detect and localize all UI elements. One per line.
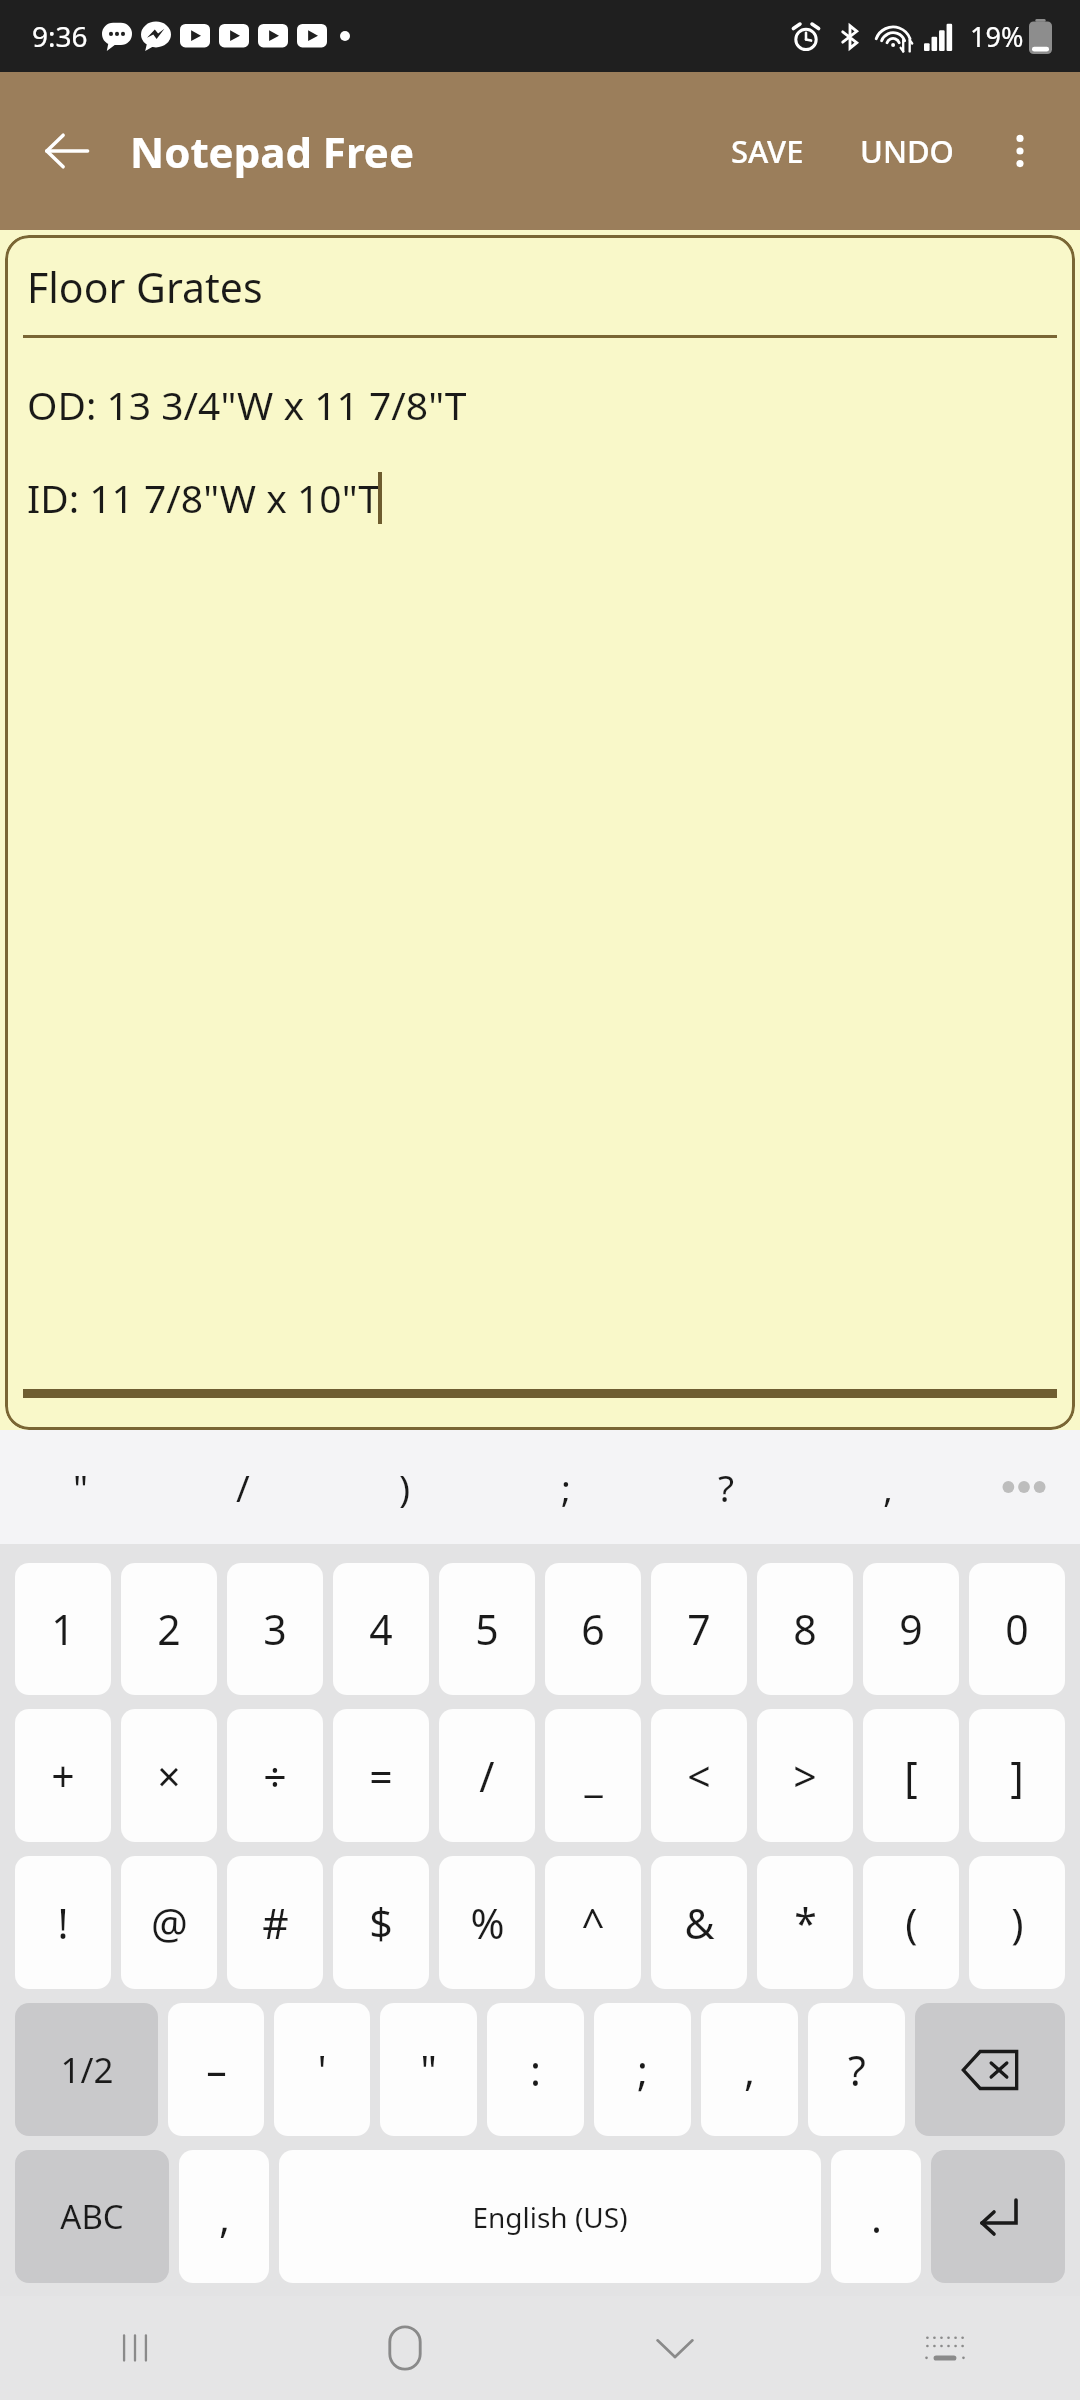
button[interactable]: < xyxy=(651,1709,747,1842)
staticText: , xyxy=(219,2189,230,2245)
button[interactable]: Hide keyboard xyxy=(540,2296,810,2400)
button[interactable]: ? xyxy=(646,1430,807,1544)
staticText: ; xyxy=(637,2042,648,2098)
staticText: @ xyxy=(151,1895,188,1951)
button[interactable]: 4 xyxy=(333,1563,429,1695)
button[interactable]: ! xyxy=(15,1856,111,1989)
staticText: ID: 11 7/8"W x 10"T xyxy=(27,471,381,524)
staticText: < xyxy=(687,1748,711,1804)
button[interactable]: English (US) xyxy=(279,2150,821,2283)
button[interactable]: _ xyxy=(545,1709,641,1842)
staticText: ; xyxy=(561,1462,571,1512)
staticText: Notepad Free xyxy=(130,123,415,180)
staticText: : xyxy=(530,2042,541,2098)
staticText: + xyxy=(51,1748,75,1804)
button[interactable]: ] xyxy=(969,1709,1065,1842)
staticText: ( xyxy=(905,1895,918,1951)
staticText: ] xyxy=(1010,1748,1024,1804)
button[interactable]: Backspace xyxy=(915,2003,1065,2136)
button[interactable]: > xyxy=(757,1709,853,1842)
staticText: 5 xyxy=(475,1601,499,1657)
button[interactable]: ; xyxy=(594,2003,691,2136)
button[interactable]: ; xyxy=(485,1430,646,1544)
button[interactable]: ÷ xyxy=(227,1709,323,1842)
staticText: Floor Grates xyxy=(27,259,263,315)
staticText: – xyxy=(206,2042,227,2098)
button[interactable]: ) xyxy=(324,1430,485,1544)
button[interactable]: More suggestions xyxy=(968,1430,1080,1544)
staticText: OD: 13 3/4"W x 11 7/8"T xyxy=(27,378,467,431)
button[interactable]: 9 xyxy=(863,1563,959,1695)
button[interactable]: 1/2 xyxy=(15,2003,158,2136)
button[interactable]: # xyxy=(227,1856,323,1989)
button[interactable]: ^ xyxy=(545,1856,641,1989)
button[interactable]: ( xyxy=(863,1856,959,1989)
button[interactable]: ' xyxy=(274,2003,370,2136)
button[interactable]: . xyxy=(831,2150,921,2283)
button[interactable]: 6 xyxy=(545,1563,641,1695)
button[interactable]: ? xyxy=(808,2003,905,2136)
button[interactable]: 0 xyxy=(969,1563,1065,1695)
button[interactable]: 1 xyxy=(15,1563,111,1695)
staticText: , xyxy=(744,2042,755,2098)
button[interactable]: @ xyxy=(121,1856,217,1989)
staticText: 4 xyxy=(369,1601,393,1657)
button[interactable]: 2 xyxy=(121,1563,217,1695)
staticText: ? xyxy=(848,2042,866,2098)
button[interactable]: Recent apps xyxy=(0,2296,270,2400)
staticText: ^ xyxy=(581,1895,605,1951)
button[interactable]: SAVE xyxy=(715,114,820,188)
button[interactable]: , xyxy=(701,2003,798,2136)
button[interactable]: + xyxy=(15,1709,111,1842)
staticText: 3 xyxy=(263,1601,287,1657)
staticText: . xyxy=(871,2189,882,2245)
button[interactable]: Home xyxy=(270,2296,540,2400)
button[interactable]: , xyxy=(179,2150,269,2283)
staticText: ) xyxy=(1011,1895,1024,1951)
button[interactable]: 3 xyxy=(227,1563,323,1695)
button[interactable]: = xyxy=(333,1709,429,1842)
button[interactable]: $ xyxy=(333,1856,429,1989)
button[interactable]: / xyxy=(439,1709,535,1842)
staticText: 1/2 xyxy=(60,2046,114,2094)
staticText: " xyxy=(73,1462,89,1512)
button[interactable]: " xyxy=(0,1430,162,1544)
staticText: * xyxy=(794,1895,817,1951)
button[interactable]: – xyxy=(168,2003,264,2136)
button[interactable]: / xyxy=(162,1430,324,1544)
button[interactable]: : xyxy=(487,2003,584,2136)
staticText: 6 xyxy=(581,1601,605,1657)
staticText: [ xyxy=(904,1748,918,1804)
button[interactable]: " xyxy=(380,2003,477,2136)
staticText: ) xyxy=(399,1462,411,1512)
button[interactable]: UNDO xyxy=(844,114,970,188)
staticText: , xyxy=(883,1462,893,1512)
staticText: 2 xyxy=(157,1601,181,1657)
staticText: / xyxy=(236,1462,250,1512)
button[interactable]: Change keyboard xyxy=(810,2296,1080,2400)
button[interactable]: Back xyxy=(24,108,110,194)
button[interactable]: 8 xyxy=(757,1563,853,1695)
button[interactable]: & xyxy=(651,1856,747,1989)
button[interactable]: ABC xyxy=(15,2150,169,2283)
staticText: ÷ xyxy=(263,1748,287,1804)
button[interactable]: × xyxy=(121,1709,217,1842)
staticText: # xyxy=(262,1895,289,1951)
button[interactable]: [ xyxy=(863,1709,959,1842)
button[interactable]: Floor Grates xyxy=(5,235,1075,1430)
staticText: 9 xyxy=(899,1601,923,1657)
button[interactable]: ) xyxy=(969,1856,1065,1989)
staticText: 9:36 xyxy=(32,17,88,55)
staticText: = xyxy=(369,1748,393,1804)
staticText: $ xyxy=(369,1895,393,1951)
button[interactable]: 7 xyxy=(651,1563,747,1695)
button[interactable]: Enter xyxy=(931,2150,1065,2283)
staticText: 1 xyxy=(51,1601,75,1657)
button[interactable]: * xyxy=(757,1856,853,1989)
button[interactable]: % xyxy=(439,1856,535,1989)
staticText: ! xyxy=(57,1895,69,1951)
button[interactable]: 5 xyxy=(439,1563,535,1695)
button[interactable]: More options xyxy=(980,111,1060,191)
staticText: ABC xyxy=(60,2194,124,2239)
button[interactable]: , xyxy=(807,1430,968,1544)
